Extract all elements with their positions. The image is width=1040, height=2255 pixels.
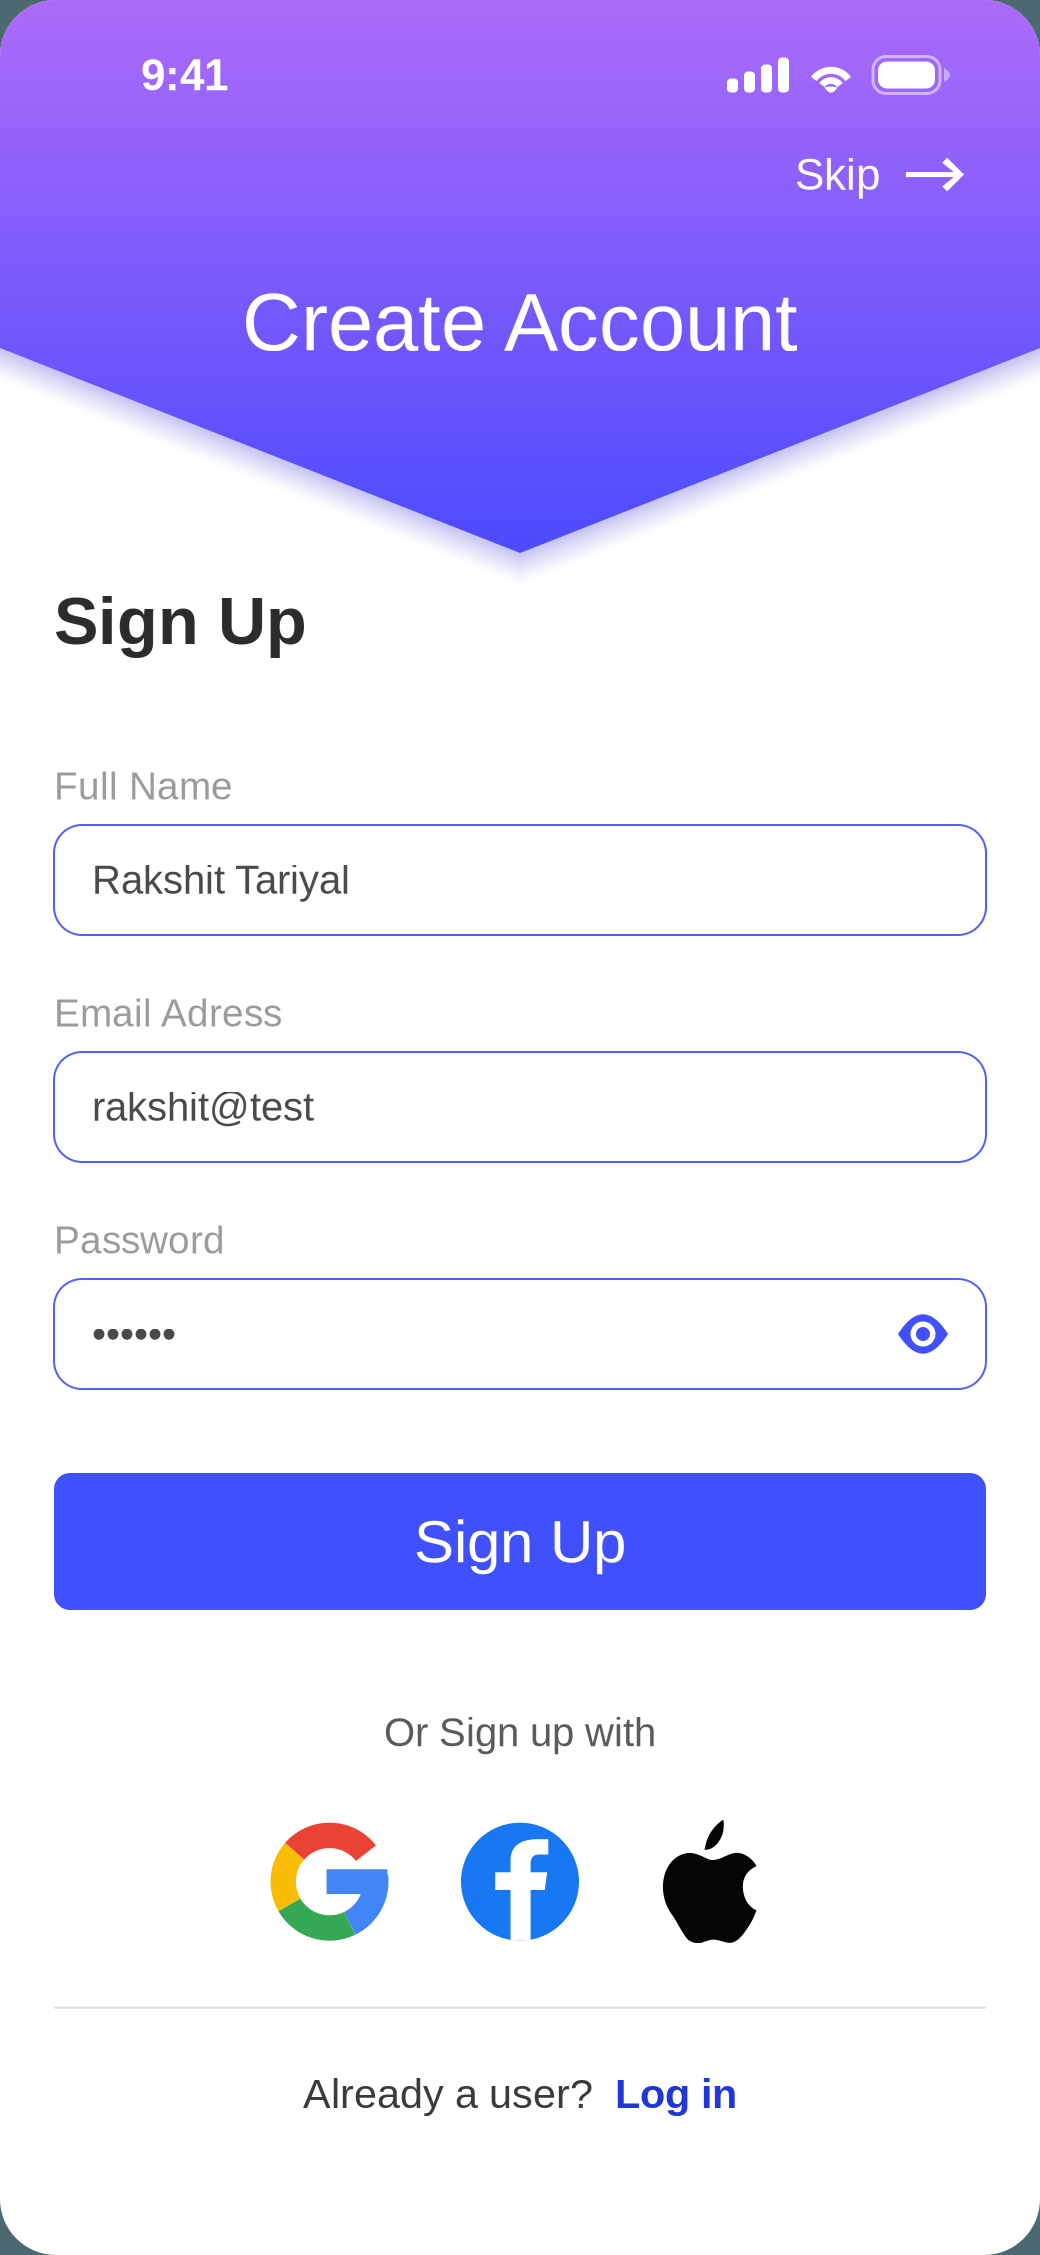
- staticText: Skip: [795, 150, 880, 199]
- staticText: Already a user?: [303, 2071, 593, 2117]
- staticText: Or Sign up with: [384, 1710, 656, 1755]
- staticText: Email Adress: [54, 991, 282, 1035]
- staticText: 9:41: [141, 50, 228, 100]
- button[interactable]: Log in: [615, 2071, 737, 2117]
- button[interactable]: Sign up with Apple: [650, 1822, 770, 1942]
- staticText: Log in: [615, 2071, 737, 2117]
- staticText: Sign Up: [414, 1508, 626, 1575]
- button[interactable]: Sign Up: [54, 1473, 986, 1610]
- staticText: ••••••: [92, 1312, 176, 1356]
- staticText: Sign Up: [54, 584, 307, 658]
- staticText: Create Account: [242, 277, 798, 367]
- button[interactable]: Skip: [783, 136, 976, 213]
- staticText: rakshit@test: [92, 1085, 314, 1129]
- staticText: Password: [54, 1218, 225, 1262]
- button[interactable]: Sign up with Facebook: [460, 1822, 580, 1942]
- staticText: Rakshit Tariyal: [92, 858, 350, 902]
- button[interactable]: Sign up with Google: [269, 1822, 389, 1942]
- staticText: Full Name: [54, 764, 233, 808]
